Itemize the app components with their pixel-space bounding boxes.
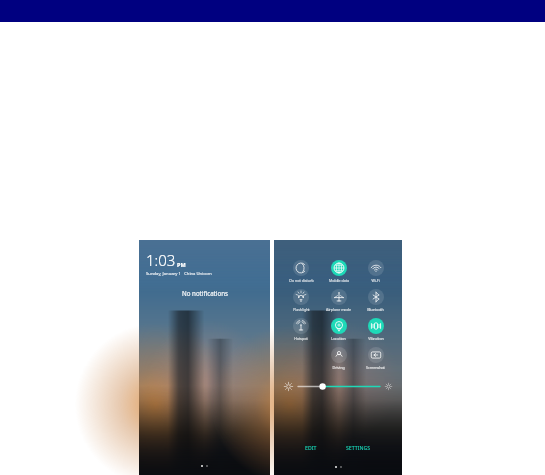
- button[interactable]: Brightness: [284, 382, 392, 391]
- staticText: Location: [331, 336, 346, 341]
- staticText: 1:03: [146, 250, 176, 270]
- staticText: No notifications: [182, 289, 228, 297]
- staticText: Do not disturb: [289, 278, 314, 283]
- staticText: Screenshot: [366, 365, 385, 370]
- button[interactable]: EDIT: [299, 442, 323, 453]
- staticText: SETTINGS: [346, 444, 371, 451]
- staticText: EDIT: [305, 444, 317, 451]
- button[interactable]: Vibration: [357, 318, 394, 341]
- button[interactable]: SETTINGS: [340, 442, 377, 453]
- staticText: Hotspot: [294, 336, 308, 341]
- staticText: Airplane mode: [326, 307, 351, 312]
- button[interactable]: Hotspot: [282, 318, 320, 341]
- staticText: Wi-Fi: [371, 278, 380, 283]
- staticText: Bluetooth: [367, 307, 384, 312]
- staticText: Flashlight: [293, 307, 310, 312]
- button[interactable]: Location: [320, 318, 357, 341]
- button[interactable]: Screenshot: [357, 347, 394, 370]
- button[interactable]: Flashlight: [282, 289, 320, 312]
- button[interactable]: Mobile data: [320, 260, 357, 283]
- button[interactable]: Bluetooth: [357, 289, 394, 312]
- button[interactable]: Wi-Fi: [357, 260, 394, 283]
- staticText: Sunday, January 1 China Unicom: [146, 271, 212, 277]
- staticText: Vibration: [368, 336, 384, 341]
- staticText: Driving: [332, 365, 345, 370]
- button[interactable]: Airplane mode: [320, 289, 357, 312]
- staticText: PM: [177, 261, 186, 268]
- button[interactable]: Driving: [320, 347, 357, 370]
- staticText: Mobile data: [329, 278, 349, 283]
- button[interactable]: Do not disturb: [282, 260, 320, 283]
